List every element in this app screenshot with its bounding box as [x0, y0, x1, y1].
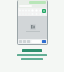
button[interactable]	[35, 9, 38, 12]
button[interactable]: Confirm	[42, 40, 46, 43]
button[interactable]	[31, 9, 34, 12]
button[interactable]	[43, 9, 46, 12]
button[interactable]: Send	[42, 9, 46, 13]
button[interactable]	[39, 9, 42, 12]
button[interactable]: Send	[17, 0, 48, 45]
button[interactable]	[6, 48, 58, 52]
